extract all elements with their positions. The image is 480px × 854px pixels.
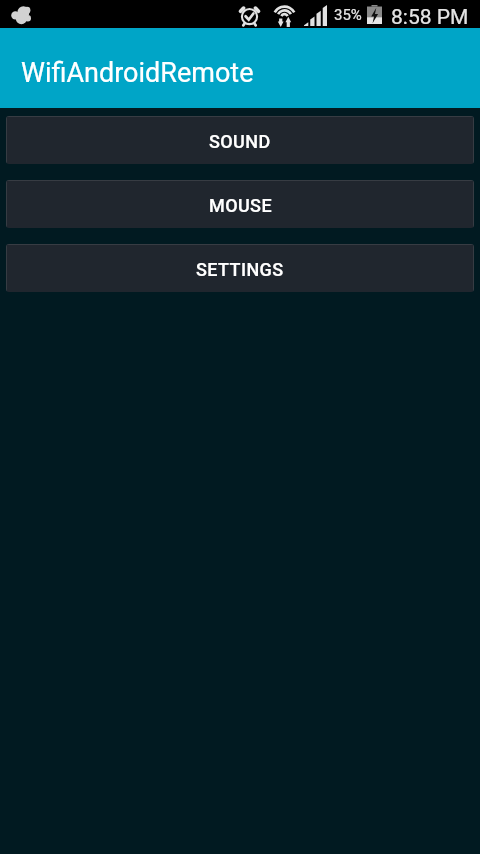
button[interactable]: MOUSE xyxy=(6,180,474,228)
button[interactable]: SOUND xyxy=(6,116,474,164)
staticText: WifiAndroidRemote xyxy=(21,57,254,89)
staticText: 35% xyxy=(334,6,362,24)
staticText: SETTINGS xyxy=(196,259,284,280)
other: Status bar xyxy=(0,0,480,28)
staticText: SOUND xyxy=(209,131,271,152)
staticText: MOUSE xyxy=(209,195,272,216)
staticText: 8:58 PM xyxy=(391,5,469,30)
button[interactable]: SETTINGS xyxy=(6,244,474,292)
